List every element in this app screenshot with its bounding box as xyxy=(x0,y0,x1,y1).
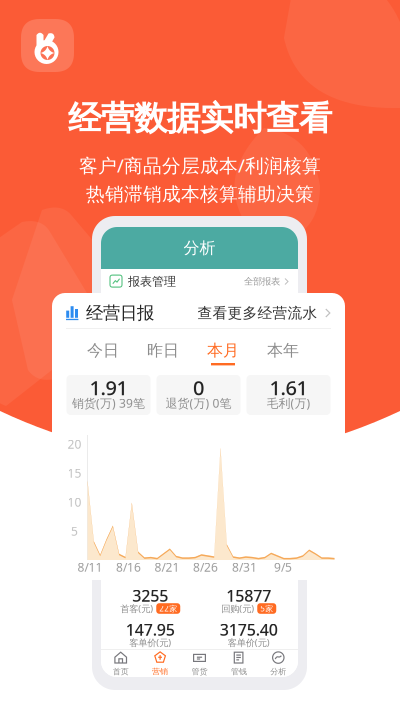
staticText: 9/5 xyxy=(274,559,292,575)
staticText: 0 xyxy=(193,374,204,401)
staticText: 3255 xyxy=(132,585,168,606)
staticText: 本年 xyxy=(267,341,299,360)
staticText: 退货(万) 0笔 xyxy=(165,395,231,411)
staticText: 15877 xyxy=(226,585,271,606)
staticText: 首客(元) xyxy=(120,602,153,615)
staticText: 经营日报 xyxy=(86,302,154,324)
staticText: 8/16 xyxy=(116,559,141,575)
button[interactable]: 本年 xyxy=(253,329,313,373)
staticText: 全部报表 xyxy=(244,276,280,287)
staticText: 首页 xyxy=(113,667,129,676)
staticText: 10 xyxy=(67,494,81,510)
button[interactable]: 管钱 xyxy=(219,647,259,679)
staticText: 1.61 xyxy=(269,374,307,401)
staticText: 毛利(万) xyxy=(266,395,310,411)
staticText: 今日 xyxy=(87,341,119,360)
staticText: 报表管理 xyxy=(128,274,176,289)
staticText: 8/26 xyxy=(193,559,218,575)
button[interactable]: 分析 xyxy=(259,647,298,679)
staticText: 8/21 xyxy=(154,559,179,575)
staticText: 热销滞销成本核算辅助决策 xyxy=(86,183,314,206)
staticText: 查看更多经营流水 xyxy=(198,304,318,322)
staticText: 昨日 xyxy=(147,341,179,360)
staticText: 15 xyxy=(67,465,81,481)
staticText: 分析 xyxy=(183,238,215,258)
staticText: 经营数据实时查看 xyxy=(68,98,332,139)
staticText: 147.95 xyxy=(126,619,175,640)
button[interactable]: 经营日报 xyxy=(52,291,345,328)
staticText: 客单价(元) xyxy=(228,636,270,649)
staticText: 5 xyxy=(71,523,78,539)
button[interactable]: 昨日 xyxy=(133,329,193,373)
staticText: 8/31 xyxy=(232,559,257,575)
button[interactable]: 管货 xyxy=(180,647,219,679)
staticText: 营销 xyxy=(152,667,168,676)
staticText: 销货(万) 39笔 xyxy=(72,395,145,411)
staticText: 回购(元) xyxy=(221,602,254,615)
button[interactable]: 本月 xyxy=(193,329,253,373)
staticText: 本月 xyxy=(207,341,239,360)
staticText: 管钱 xyxy=(231,667,247,676)
staticText: 20 xyxy=(67,436,81,452)
staticText: 5家 xyxy=(260,603,273,614)
staticText: 22家 xyxy=(159,603,177,614)
staticText: 8/11 xyxy=(77,559,102,575)
button[interactable]: 首页 xyxy=(101,647,140,679)
staticText: 客单价(元) xyxy=(129,636,171,649)
button[interactable]: 营销 xyxy=(140,647,180,679)
staticText: 客户/商品分层成本/利润核算 xyxy=(79,153,321,178)
button[interactable]: 今日 xyxy=(73,329,133,373)
staticText: 分析 xyxy=(270,667,286,676)
staticText: 3175.40 xyxy=(220,619,278,640)
staticText: 1.91 xyxy=(89,374,127,401)
staticText: 管货 xyxy=(191,667,207,676)
